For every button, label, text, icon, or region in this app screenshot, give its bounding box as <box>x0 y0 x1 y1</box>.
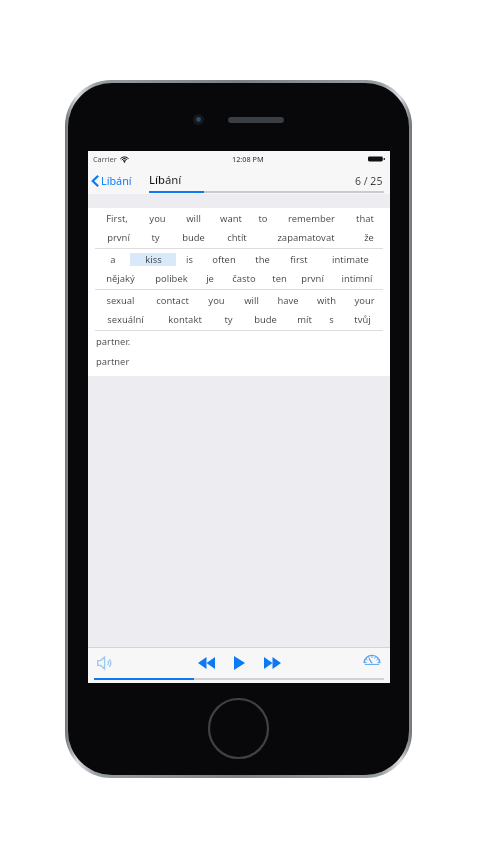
staticText: chtít <box>227 231 247 244</box>
staticText: Líbání <box>149 172 182 187</box>
button[interactable]: sexual <box>88 290 390 330</box>
staticText: kontakt <box>168 313 202 326</box>
staticText: to <box>258 212 268 225</box>
staticText: partner <box>96 355 130 368</box>
staticText: kiss <box>145 253 162 266</box>
button[interactable]: Play <box>228 652 250 674</box>
staticText: Carrier <box>93 154 117 164</box>
staticText: sexuální <box>107 313 144 326</box>
staticText: tvůj <box>354 313 371 326</box>
staticText: partner. <box>96 335 131 348</box>
staticText: sexual <box>106 294 135 307</box>
staticText: that <box>356 212 374 225</box>
staticText: often <box>212 253 236 266</box>
staticText: často <box>232 272 256 285</box>
staticText: First, <box>106 212 128 225</box>
staticText: you <box>149 212 166 225</box>
button[interactable]: Playback speed 1x <box>360 651 384 675</box>
staticText: have <box>277 294 299 307</box>
staticText: ty <box>224 313 233 326</box>
staticText: nějaký <box>106 272 135 285</box>
button[interactable]: a <box>88 249 390 289</box>
staticText: bude <box>254 313 277 326</box>
button[interactable]: Líbání <box>88 170 136 191</box>
staticText: ten <box>272 272 287 285</box>
staticText: první <box>301 272 324 285</box>
staticText: is <box>186 253 193 266</box>
staticText: zapamatovat <box>277 231 335 244</box>
staticText: intimate <box>332 253 369 266</box>
staticText: Líbání <box>101 173 132 188</box>
staticText: will <box>244 294 259 307</box>
staticText: bude <box>182 231 205 244</box>
button[interactable]: First, <box>88 208 390 248</box>
staticText: will <box>186 212 201 225</box>
staticText: a <box>110 253 116 266</box>
staticText: first <box>290 253 308 266</box>
staticText: mít <box>297 313 312 326</box>
staticText: s <box>329 313 334 326</box>
staticText: contact <box>156 294 189 307</box>
staticText: you <box>208 294 225 307</box>
button[interactable]: Rewind <box>193 652 219 674</box>
staticText: 6 / 25 <box>355 174 383 188</box>
staticText: polibek <box>155 272 188 285</box>
staticText: je <box>206 272 214 285</box>
button[interactable]: partner. <box>88 331 390 372</box>
staticText: remember <box>288 212 335 225</box>
staticText: 12:08 PM <box>232 154 264 164</box>
staticText: want <box>220 212 242 225</box>
staticText: your <box>354 294 375 307</box>
staticText: první <box>107 231 130 244</box>
staticText: ty <box>151 231 160 244</box>
button[interactable]: Fast forward <box>259 652 285 674</box>
staticText: intimní <box>341 272 373 285</box>
staticText: the <box>255 253 270 266</box>
staticText: že <box>364 231 374 244</box>
staticText: with <box>317 294 336 307</box>
button[interactable]: Volume <box>94 651 118 675</box>
